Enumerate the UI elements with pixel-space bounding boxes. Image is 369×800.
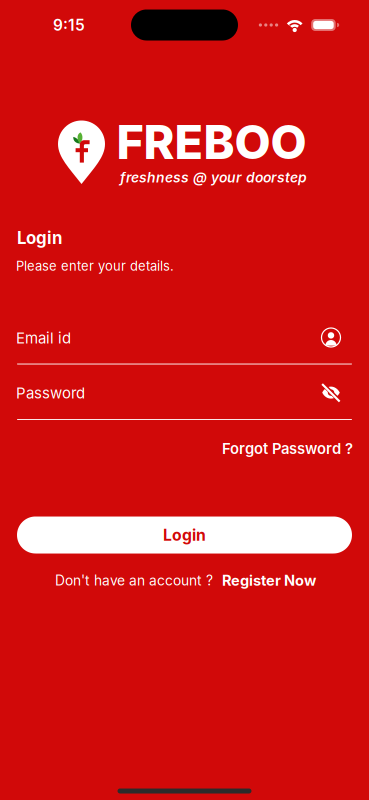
staticText: Email id [16, 329, 71, 347]
button[interactable]: Show password [322, 384, 340, 401]
staticText: freshness @ your doorstep [120, 169, 307, 186]
staticText: Don't have an account ? [55, 572, 213, 589]
staticText: FREBOO [116, 114, 306, 170]
button[interactable]: Forgot Password ? [222, 439, 353, 457]
staticText: Password [16, 384, 85, 402]
button[interactable]: Register Now [222, 572, 316, 589]
staticText: Forgot Password ? [222, 439, 353, 457]
staticText: 9:15 [53, 16, 85, 34]
staticText: Login [17, 228, 62, 248]
staticText: Login [163, 525, 206, 544]
button[interactable]: Login [17, 516, 352, 553]
staticText: Register Now [222, 572, 316, 589]
staticText: Please enter your details. [16, 258, 174, 274]
button[interactable]: Account [321, 328, 340, 347]
